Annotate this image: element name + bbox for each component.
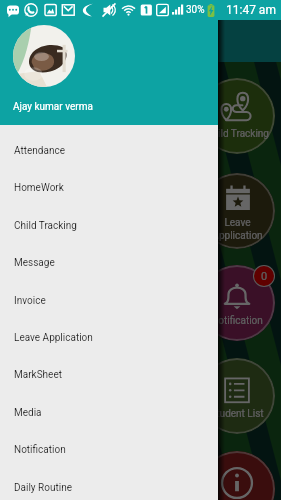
button[interactable]: App Info (199, 451, 275, 500)
button[interactable]: Leave Application (0, 319, 218, 356)
button[interactable]: Leave Application (199, 173, 275, 249)
staticText: Child Tracking (14, 220, 77, 232)
staticText: Ajay kumar verma (13, 101, 93, 113)
button[interactable]: Notification (0, 431, 218, 468)
staticText: Notification (14, 444, 66, 456)
staticText: MarkSheet (14, 369, 62, 381)
staticText: Student List (210, 408, 264, 420)
staticText: Child Tracking (206, 128, 269, 140)
staticText: Attendance (14, 145, 65, 157)
button[interactable]: MarkSheet (0, 356, 218, 393)
other: Notification badge (254, 266, 274, 286)
button[interactable]: Child Tracking (0, 207, 218, 244)
staticText: Media (14, 407, 42, 419)
staticText: HomeWork (14, 182, 64, 194)
button[interactable]: Invoice (0, 282, 218, 319)
button[interactable]: Daily Routine (0, 469, 218, 500)
staticText: Message (14, 257, 55, 269)
staticText: Leave Application (14, 332, 93, 344)
staticText: Invoice (14, 295, 46, 307)
button[interactable]: Student List (199, 358, 275, 434)
staticText: Daily Routine (14, 482, 72, 494)
staticText: 0 (261, 270, 268, 283)
staticText: 30% (186, 4, 205, 16)
button[interactable]: Media (0, 394, 218, 431)
staticText: 11:47 am (226, 3, 276, 17)
button[interactable]: Attendance (0, 132, 218, 169)
button[interactable]: HomeWork (0, 169, 218, 206)
button[interactable]: Child Tracking (199, 78, 275, 154)
staticText: Leave Application (212, 217, 263, 241)
button[interactable]: Message (0, 244, 218, 281)
button[interactable]: Notification (199, 265, 275, 341)
staticText: Notification (211, 315, 263, 327)
